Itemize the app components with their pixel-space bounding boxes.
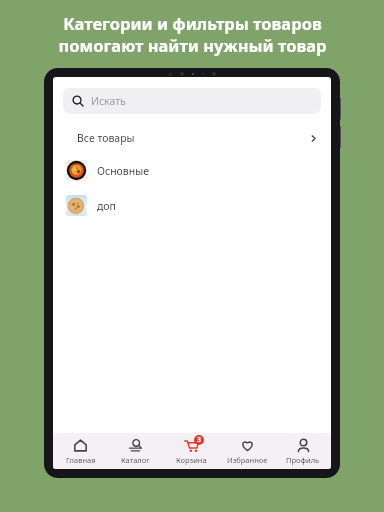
staticText: Избранное	[227, 455, 268, 465]
button[interactable]: Корзина	[163, 433, 219, 469]
button[interactable]: Основные	[53, 153, 331, 188]
staticText: Категории и фильтры товаров	[63, 12, 322, 34]
button[interactable]: Избранное	[219, 433, 275, 469]
staticText: доп	[97, 199, 116, 213]
staticText: Основные	[97, 164, 149, 178]
staticText: 3	[197, 435, 202, 445]
button[interactable]: Все товары	[53, 123, 331, 153]
button[interactable]: Искать	[63, 88, 321, 114]
staticText: Профиль	[286, 455, 320, 465]
button[interactable]: доп	[53, 188, 331, 223]
staticText: Искать	[91, 94, 126, 108]
button[interactable]: Главная	[53, 433, 108, 469]
staticText: Каталог	[121, 455, 150, 465]
button[interactable]: Каталог	[108, 433, 163, 469]
button[interactable]: Профиль	[275, 433, 331, 469]
staticText: Корзина	[176, 455, 207, 465]
staticText: Все товары	[77, 131, 135, 145]
staticText: Главная	[66, 455, 96, 465]
staticText: помогают найти нужный товар	[58, 34, 327, 56]
